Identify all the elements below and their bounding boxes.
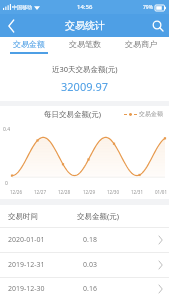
button[interactable]: 2020-01-01	[0, 228, 169, 252]
staticText: 0.18	[83, 235, 158, 245]
button[interactable]: Search	[146, 14, 169, 37]
staticText: 79%	[143, 4, 153, 11]
staticText: 2019-12-30	[8, 284, 83, 294]
staticText: 2020-01-01	[8, 235, 83, 245]
staticText: 近30天交易金额(元)	[52, 64, 118, 74]
staticText: 交易金额	[13, 39, 45, 49]
staticText: 0.03	[83, 260, 158, 270]
staticText: 交易金额(元)	[77, 211, 147, 221]
button[interactable]: 交易商户	[113, 37, 169, 56]
staticText: 交易商户	[125, 39, 157, 49]
staticText: 14:56	[77, 3, 93, 11]
staticText: 交易金额	[139, 110, 163, 118]
staticText: 12/30	[107, 189, 119, 195]
staticText: 交易时间	[8, 212, 77, 221]
button[interactable]: Back	[0, 14, 23, 37]
staticText: 12/31	[131, 189, 143, 195]
staticText: 每日交易金额(元)	[44, 109, 101, 119]
staticText: 01/01	[155, 189, 167, 195]
staticText: 交易笔数	[69, 39, 101, 49]
button[interactable]: 交易笔数	[57, 37, 113, 56]
button[interactable]: 交易金额	[0, 37, 57, 56]
staticText: 32009.97	[61, 79, 108, 94]
staticText: 0	[5, 180, 8, 187]
staticText: 交易统计	[65, 19, 105, 32]
staticText: 0.16	[83, 284, 158, 294]
staticText: 12/28	[58, 189, 70, 195]
staticText: 12/26	[10, 189, 22, 195]
staticText: 2019-12-31	[8, 260, 83, 270]
staticText: 12/27	[34, 189, 46, 195]
staticText: 中国移动	[12, 4, 32, 10]
button[interactable]: 2019-12-30	[0, 278, 169, 300]
button[interactable]: 2019-12-31	[0, 253, 169, 277]
staticText: 12/29	[83, 189, 95, 195]
staticText: 0.4	[3, 126, 11, 133]
